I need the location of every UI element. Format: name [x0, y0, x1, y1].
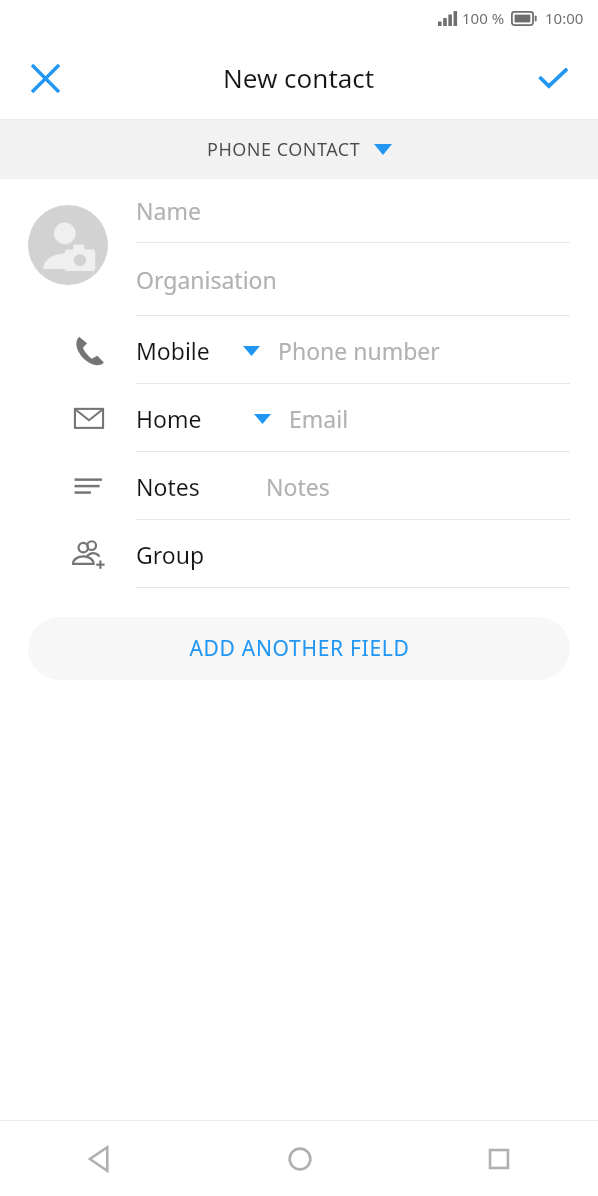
button[interactable]: Group: [0, 520, 598, 588]
staticText: Email: [289, 403, 349, 434]
staticText: ADD ANOTHER FIELD: [189, 634, 410, 663]
staticText: PHONE CONTACT: [207, 137, 361, 162]
button[interactable]: Name: [136, 179, 570, 242]
staticText: Home: [136, 403, 202, 434]
button[interactable]: Save: [522, 47, 584, 109]
button[interactable]: Home: [0, 384, 598, 452]
button[interactable]: Organisation: [136, 243, 570, 315]
button[interactable]: Add photo: [28, 205, 108, 285]
button[interactable]: PHONE CONTACT: [0, 120, 598, 179]
staticText: Notes: [266, 471, 330, 502]
staticText: Name: [136, 195, 201, 226]
button[interactable]: Recents: [399, 1121, 598, 1196]
button[interactable]: Mobile: [0, 316, 598, 384]
staticText: Mobile: [136, 335, 210, 366]
staticText: New contact: [223, 60, 375, 95]
staticText: 10:00: [545, 8, 584, 28]
button[interactable]: Back: [0, 1121, 200, 1196]
button[interactable]: Notes: [0, 452, 598, 520]
staticText: Phone number: [278, 335, 440, 366]
staticText: Group: [136, 539, 205, 570]
staticText: Notes: [136, 471, 200, 502]
staticText: 100 %: [462, 8, 505, 28]
button[interactable]: Cancel: [14, 47, 76, 109]
button[interactable]: Home: [200, 1121, 399, 1196]
staticText: Organisation: [136, 264, 277, 295]
button[interactable]: ADD ANOTHER FIELD: [28, 617, 570, 680]
